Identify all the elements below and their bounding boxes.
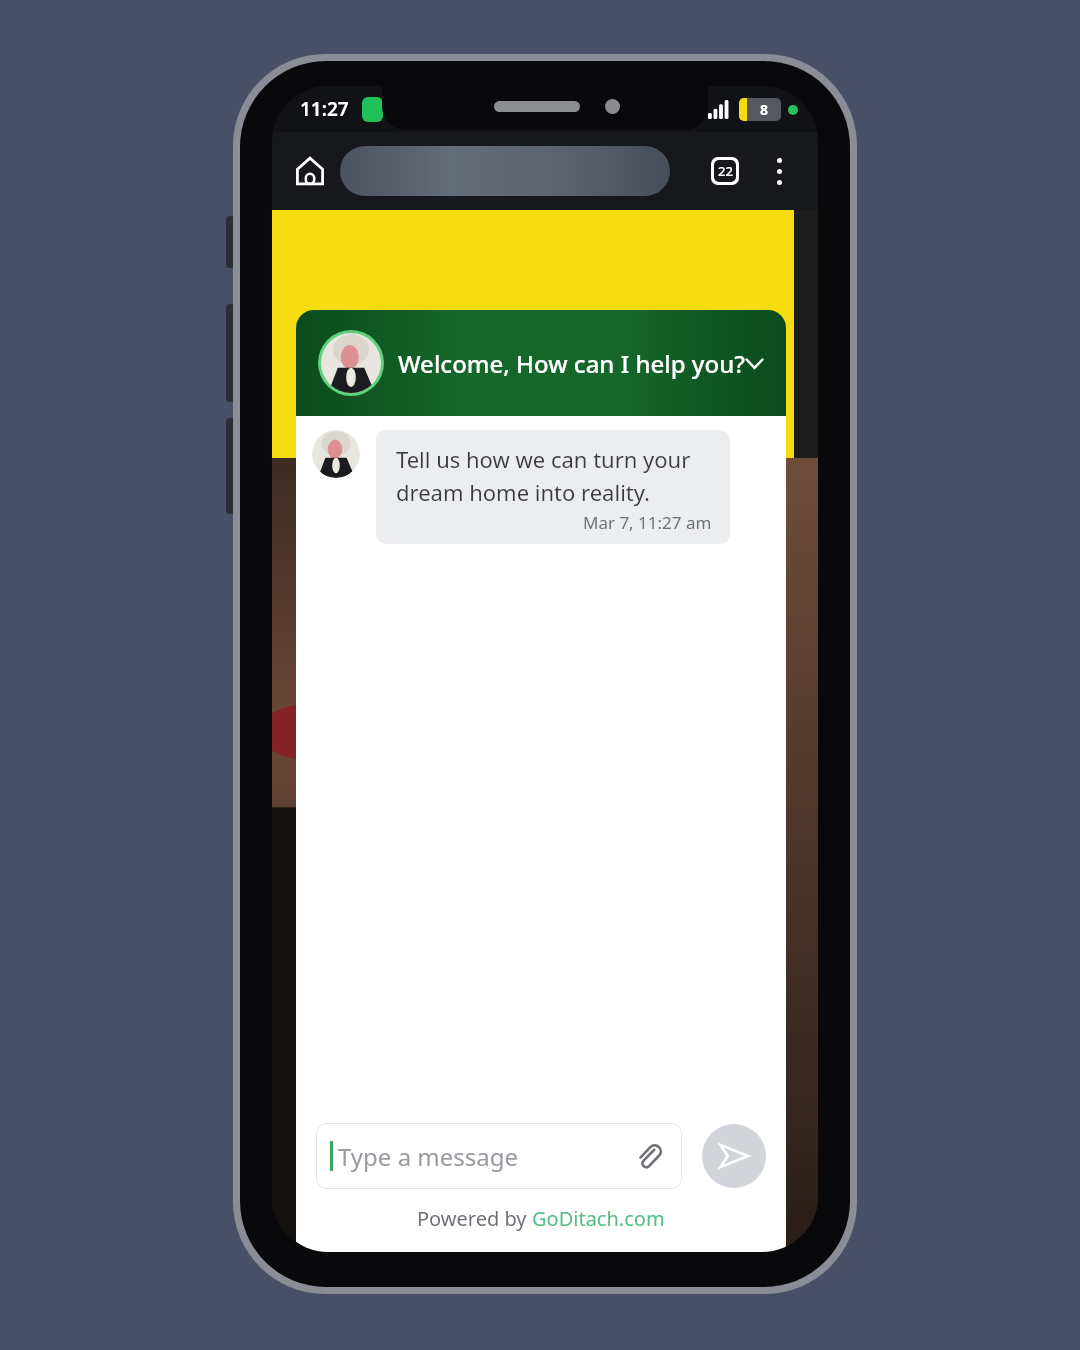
button[interactable]: Tabs [702, 148, 748, 194]
staticText: Type a message [338, 1140, 519, 1173]
staticText: Mar 7, 11:27 am [583, 511, 712, 534]
button[interactable]: Type a message [316, 1123, 682, 1189]
button[interactable]: Collapse chat [745, 344, 764, 382]
staticText: Powered by [417, 1205, 532, 1232]
button[interactable]: GoDitach.com [532, 1205, 665, 1232]
staticText: 8 [760, 100, 769, 119]
staticText: 11:27 [300, 96, 349, 122]
button[interactable]: Send [702, 1124, 766, 1188]
button[interactable]: Welcome, How can I help you? [296, 310, 786, 416]
staticText: 22 [718, 162, 733, 180]
button[interactable]: Attach file [628, 1136, 668, 1176]
button[interactable]: Home [284, 145, 336, 197]
staticText: Tell us how we can turn your dream home … [396, 444, 712, 507]
button[interactable]: More options [756, 148, 802, 194]
button[interactable]: Address bar [340, 146, 670, 196]
staticText: Welcome, How can I help you? [398, 347, 745, 380]
